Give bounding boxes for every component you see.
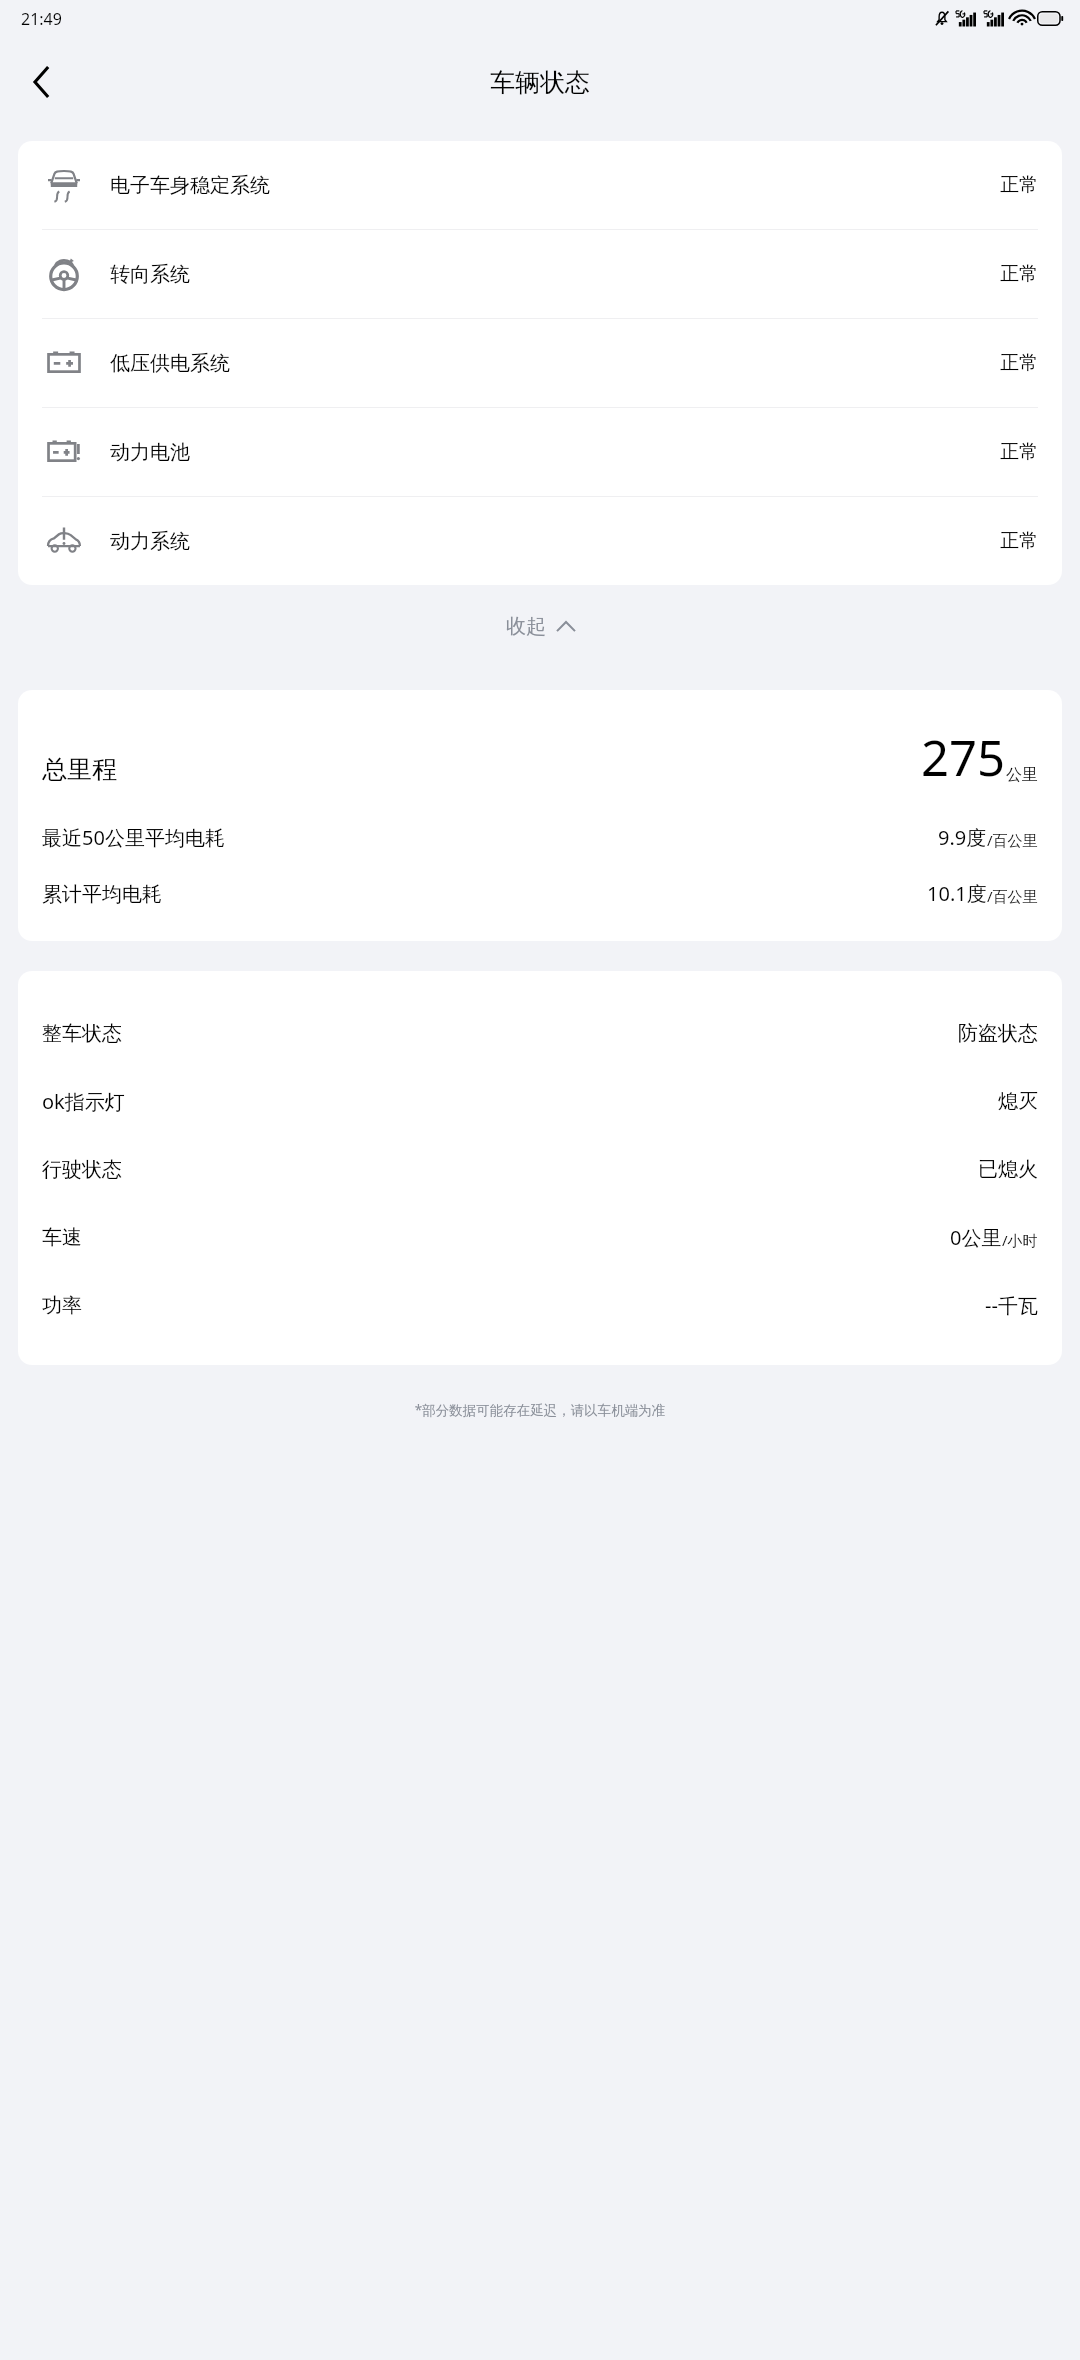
staticText: 已熄火: [978, 1157, 1038, 1182]
staticText: 正常: [1000, 440, 1038, 464]
staticText: ok指示灯: [42, 1088, 125, 1115]
button[interactable]: 最近50公里平均电耗: [42, 824, 1038, 851]
staticText: 正常: [1000, 262, 1038, 286]
staticText: 最近50公里平均电耗: [42, 824, 225, 851]
staticText: 防盗状态: [958, 1021, 1038, 1046]
staticText: 总里程: [42, 754, 117, 785]
button[interactable]: 动力系统: [42, 497, 1038, 585]
button[interactable]: 累计平均电耗: [42, 880, 1038, 907]
staticText: 10.1度: [927, 880, 987, 907]
button[interactable]: 电子车身稳定系统: [42, 141, 1038, 229]
button[interactable]: 动力电池: [42, 408, 1038, 496]
staticText: 21:49: [21, 8, 62, 30]
staticText: 车辆状态: [490, 67, 590, 98]
staticText: 9.9度: [938, 824, 987, 851]
button[interactable]: 总里程: [42, 724, 1038, 791]
button[interactable]: 转向系统: [42, 230, 1038, 318]
staticText: 行驶状态: [42, 1157, 122, 1182]
staticText: /百公里: [987, 886, 1038, 906]
staticText: 车速: [42, 1225, 82, 1250]
button[interactable]: 车速: [42, 1203, 1038, 1271]
button[interactable]: 低压供电系统: [42, 319, 1038, 407]
staticText: 动力电池: [110, 440, 190, 465]
staticText: 动力系统: [110, 529, 190, 554]
staticText: 275: [921, 724, 1006, 791]
staticText: 转向系统: [110, 262, 190, 287]
staticText: 整车状态: [42, 1021, 122, 1046]
button[interactable]: 收起: [488, 604, 593, 649]
staticText: 正常: [1000, 351, 1038, 375]
staticText: /百公里: [987, 830, 1038, 850]
staticText: 功率: [42, 1293, 82, 1318]
button[interactable]: Back: [14, 54, 70, 110]
staticText: 公里: [1006, 765, 1038, 785]
staticText: 低压供电系统: [110, 351, 230, 376]
staticText: --千瓦: [985, 1292, 1038, 1319]
staticText: 累计平均电耗: [42, 882, 162, 907]
staticText: 0公里: [950, 1224, 1002, 1251]
staticText: *部分数据可能存在延迟，请以车机端为准: [0, 1401, 1080, 1419]
staticText: 收起: [506, 614, 546, 639]
staticText: /小时: [1002, 1230, 1038, 1250]
button[interactable]: 功率: [42, 1271, 1038, 1339]
button[interactable]: 整车状态: [42, 999, 1038, 1067]
staticText: 正常: [1000, 529, 1038, 553]
button[interactable]: 行驶状态: [42, 1135, 1038, 1203]
button[interactable]: ok指示灯: [42, 1067, 1038, 1135]
staticText: 电子车身稳定系统: [110, 173, 270, 198]
staticText: 正常: [1000, 173, 1038, 197]
staticText: 熄灭: [998, 1089, 1038, 1114]
